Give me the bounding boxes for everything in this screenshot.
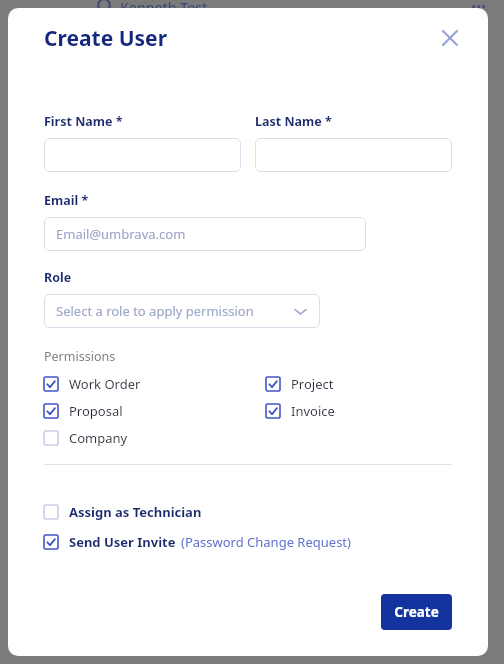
staticText: Invoice — [291, 402, 335, 420]
button[interactable]: Proposal — [44, 402, 266, 420]
button[interactable] — [44, 138, 241, 172]
staticText: Last Name * — [255, 113, 332, 130]
staticText: Kenneth Test — [120, 0, 208, 12]
staticText: First Name * — [44, 113, 123, 130]
staticText: Select a role to apply permission — [56, 302, 254, 320]
staticText: Assign as Technician — [69, 503, 202, 521]
button[interactable]: Work Order — [44, 375, 266, 393]
button[interactable]: Project — [266, 375, 334, 393]
button[interactable]: Close — [436, 24, 464, 52]
staticText: Work Order — [69, 375, 141, 393]
staticText: (Password Change Request) — [181, 533, 351, 551]
staticText: Permissions — [44, 348, 116, 365]
button[interactable] — [255, 138, 452, 172]
staticText: Role — [44, 269, 72, 286]
button[interactable]: Create — [381, 594, 452, 630]
button[interactable]: Email@umbrava.com — [44, 217, 366, 251]
staticText: Create User — [44, 24, 168, 53]
button[interactable]: Send User Invite — [44, 533, 351, 551]
staticText: Proposal — [69, 402, 123, 420]
staticText: Project — [291, 375, 334, 393]
button[interactable]: Assign as Technician — [44, 503, 202, 521]
staticText: Create — [394, 603, 439, 621]
staticText: Send User Invite — [69, 533, 176, 551]
button[interactable]: Invoice — [266, 402, 335, 420]
staticText: ⋯ — [471, 0, 486, 12]
staticText: Email * — [44, 192, 89, 209]
button[interactable]: Company — [44, 429, 266, 447]
staticText: Company — [69, 429, 128, 447]
staticText: Email@umbrava.com — [56, 225, 186, 243]
button[interactable]: Select a role to apply permission — [44, 294, 320, 328]
